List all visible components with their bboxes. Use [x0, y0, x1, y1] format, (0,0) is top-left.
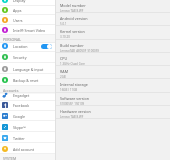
staticText: Google — [13, 114, 55, 119]
staticText: PERSONAL — [3, 37, 22, 42]
staticText: Intel® Smart Video — [13, 28, 55, 33]
staticText: Security — [13, 55, 55, 60]
staticText: 3.10.20 — [60, 35, 70, 39]
button[interactable]: Location — [0, 41, 55, 51]
staticText: Hardware version — [60, 109, 91, 114]
staticText: Users — [13, 18, 55, 23]
staticText: Kernel version — [60, 29, 85, 34]
staticText: SYSTEM — [3, 156, 17, 160]
staticText: Skype™ — [13, 125, 55, 130]
button[interactable]: Intel® Smart Video — [0, 25, 55, 35]
button[interactable]: Language & input — [0, 64, 55, 74]
staticText: Display — [13, 0, 55, 3]
button[interactable]: Display — [0, 0, 55, 5]
button[interactable]: Apps — [0, 5, 55, 15]
staticText: Location — [13, 44, 41, 49]
staticText: LenovoTAB_A8050F_S100059 — [60, 49, 100, 53]
button[interactable]: Model number — [56, 0, 170, 13]
button[interactable]: Users — [0, 15, 55, 25]
button[interactable]: Android version — [56, 13, 170, 26]
staticText: Android version — [60, 16, 88, 21]
staticText: Language & input — [13, 67, 55, 72]
button[interactable]: Build number — [56, 40, 170, 53]
staticText: 2GB — [60, 75, 66, 79]
button[interactable]: Skype™ — [0, 122, 55, 132]
staticText: Lenovo TAB 8-WF — [60, 115, 84, 119]
button[interactable]: RAM — [56, 66, 170, 79]
staticText: Facebook — [13, 103, 55, 108]
button[interactable]: Location toggle — [41, 44, 52, 49]
button[interactable]: Backup & reset — [0, 75, 55, 85]
button[interactable]: Facebook — [0, 100, 55, 110]
button[interactable]: CPU — [56, 53, 170, 66]
button[interactable]: Kernel version — [56, 26, 170, 39]
staticText: Engadget — [13, 93, 55, 98]
staticText: Lenovo TAB 8-WF — [60, 9, 84, 13]
staticText: CPU — [60, 56, 68, 61]
staticText: Model number — [60, 3, 86, 8]
staticText: Internal storage — [60, 82, 88, 87]
button[interactable]: Add account — [0, 144, 55, 154]
staticText: 5.0.1 — [60, 22, 67, 26]
staticText: 16GB / 11GB — [60, 88, 78, 92]
staticText: Twitter — [13, 136, 55, 141]
staticText: Software version — [60, 96, 90, 101]
button[interactable]: Hardware version — [56, 106, 170, 119]
button[interactable]: Software version — [56, 93, 170, 106]
staticText: Build number — [60, 43, 84, 48]
button[interactable]: Twitter — [0, 133, 55, 143]
staticText: Apps — [13, 8, 55, 13]
staticText: Backup & reset — [13, 78, 55, 83]
button[interactable]: Internal storage — [56, 79, 170, 92]
staticText: Add account — [13, 147, 55, 152]
staticText: RAM — [60, 69, 68, 74]
staticText: S100055F_150109 — [60, 102, 85, 106]
button[interactable]: Security — [0, 52, 55, 62]
staticText: 1.3GHz Quad Core — [60, 62, 85, 66]
button[interactable]: Engadget — [0, 90, 55, 100]
staticText: Accounts — [3, 88, 19, 93]
button[interactable]: Google — [0, 111, 55, 121]
